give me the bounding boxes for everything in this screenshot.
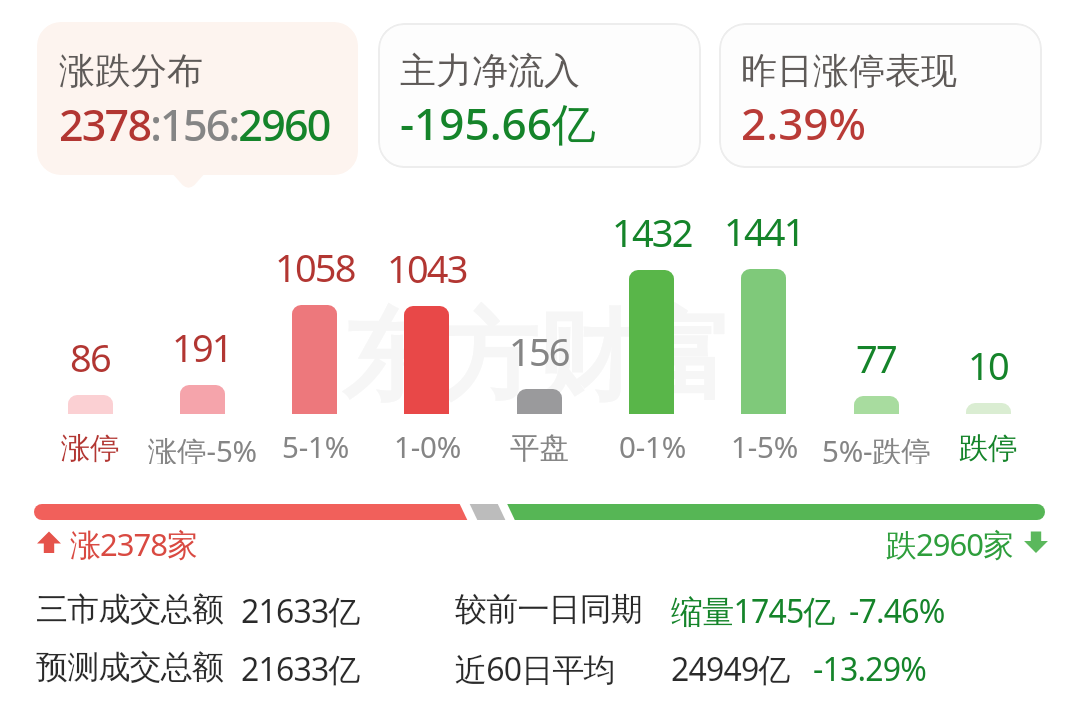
staticText: 涨2378家 <box>70 523 197 561</box>
staticText: 1058 <box>275 241 355 291</box>
button[interactable]: 涨停-5% 191 <box>146 205 258 465</box>
staticText: 较前一日同期 <box>455 589 643 629</box>
staticText: 21633亿 <box>241 589 360 633</box>
button[interactable]: 5%-跌停 77 <box>820 205 932 465</box>
staticText: 5-1% <box>282 426 349 460</box>
staticText: 86 <box>70 331 110 381</box>
staticText: 2.39% <box>741 93 866 153</box>
button[interactable]: 主力净流入 <box>378 23 701 168</box>
staticText: 1441 <box>724 205 804 255</box>
staticText: 涨跌分布 <box>59 48 203 93</box>
staticText: 191 <box>172 321 232 371</box>
staticText: 2378:156:2960 <box>59 95 330 154</box>
staticText: 涨停 <box>61 430 120 464</box>
staticText: 1-0% <box>394 426 461 460</box>
button[interactable]: 涨2378家 <box>36 523 197 561</box>
button[interactable]: 平盘 156 <box>483 205 595 465</box>
button[interactable]: 1-5% 1441 <box>708 205 820 465</box>
staticText: 涨停-5% <box>148 430 257 464</box>
button[interactable]: 1-0% 1043 <box>371 205 483 465</box>
staticText: 77 <box>856 332 896 382</box>
staticText: -7.46% <box>849 589 945 633</box>
staticText: 主力净流入 <box>400 48 580 93</box>
button[interactable] <box>30 642 1050 698</box>
staticText: 156 <box>509 325 569 375</box>
button[interactable]: 0-1% 1432 <box>596 205 708 465</box>
staticText: 三市成交总额 <box>36 589 224 629</box>
staticText: 预测成交总额 <box>36 647 224 687</box>
staticText: 1432 <box>612 206 692 256</box>
staticText: 1043 <box>387 242 467 292</box>
staticText: 24949亿 <box>671 647 790 691</box>
button[interactable]: 跌停 10 <box>932 205 1044 465</box>
staticText: 跌2960家 <box>886 523 1013 561</box>
button[interactable]: 昨日涨停表现 <box>719 23 1042 168</box>
staticText: 10 <box>968 339 1008 389</box>
button[interactable] <box>30 584 1050 640</box>
button[interactable]: 跌2960家 <box>886 523 1049 561</box>
staticText: 昨日涨停表现 <box>741 48 957 93</box>
staticText: 1-5% <box>731 426 798 460</box>
staticText: -13.29% <box>813 647 927 691</box>
button[interactable]: 涨跌分布 <box>37 22 358 175</box>
button[interactable]: 涨停 86 <box>34 205 146 465</box>
staticText: 缩量1745亿 <box>671 589 835 633</box>
staticText: 近60日平均 <box>455 647 615 691</box>
staticText: 21633亿 <box>241 647 360 691</box>
button[interactable]: 5-1% 1058 <box>259 205 371 465</box>
staticText: 跌停 <box>959 430 1018 464</box>
staticText: -195.66亿 <box>400 93 596 153</box>
staticText: 东方财富 <box>342 296 732 419</box>
staticText: 平盘 <box>510 430 569 464</box>
staticText: 5%-跌停 <box>822 430 931 464</box>
staticText: 0-1% <box>619 426 686 460</box>
